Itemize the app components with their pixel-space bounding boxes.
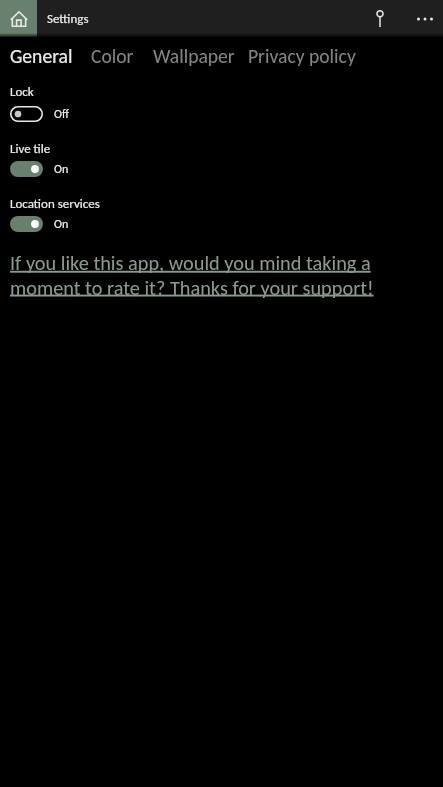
staticText: On [54,217,69,232]
staticText: Location services [10,196,100,212]
staticText: On [54,162,69,177]
button[interactable]: General [5,42,78,70]
staticText: Wallpaper [153,44,235,68]
button[interactable]: Home [0,0,37,37]
staticText: Lock [10,84,34,100]
button[interactable]: Pin to start [354,0,406,37]
staticText: Settings [47,11,89,27]
button[interactable]: If you like this app, would you mind tak… [0,251,443,300]
staticText: Privacy policy [248,44,356,68]
button[interactable]: Color [86,42,139,70]
staticText: Off [54,107,69,122]
button[interactable]: On [0,161,81,177]
staticText: Color [91,44,134,68]
button[interactable]: Wallpaper [148,42,240,70]
button[interactable]: Privacy policy [243,42,361,70]
staticText: Live tile [10,141,51,157]
staticText: General [10,44,73,68]
button[interactable]: Off [0,106,81,122]
staticText: If you like this app, would you mind tak… [10,251,433,300]
button[interactable]: More options [406,0,443,37]
button[interactable]: On [0,216,81,232]
